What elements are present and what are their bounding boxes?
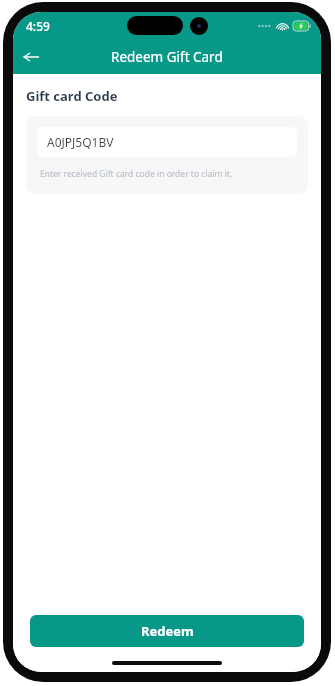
staticText: A0JPJ5Q1BV	[47, 134, 114, 150]
button[interactable]: A0JPJ5Q1BV	[37, 127, 297, 157]
staticText: Enter received Gift card code in order t…	[40, 168, 233, 180]
button[interactable]: Redeem	[30, 615, 304, 647]
staticText: Redeem Gift Card	[111, 48, 223, 66]
staticText: Gift card Code	[26, 87, 118, 105]
staticText: 4:59	[26, 18, 50, 34]
staticText: Redeem	[141, 622, 194, 640]
button[interactable]: Back	[13, 39, 49, 74]
